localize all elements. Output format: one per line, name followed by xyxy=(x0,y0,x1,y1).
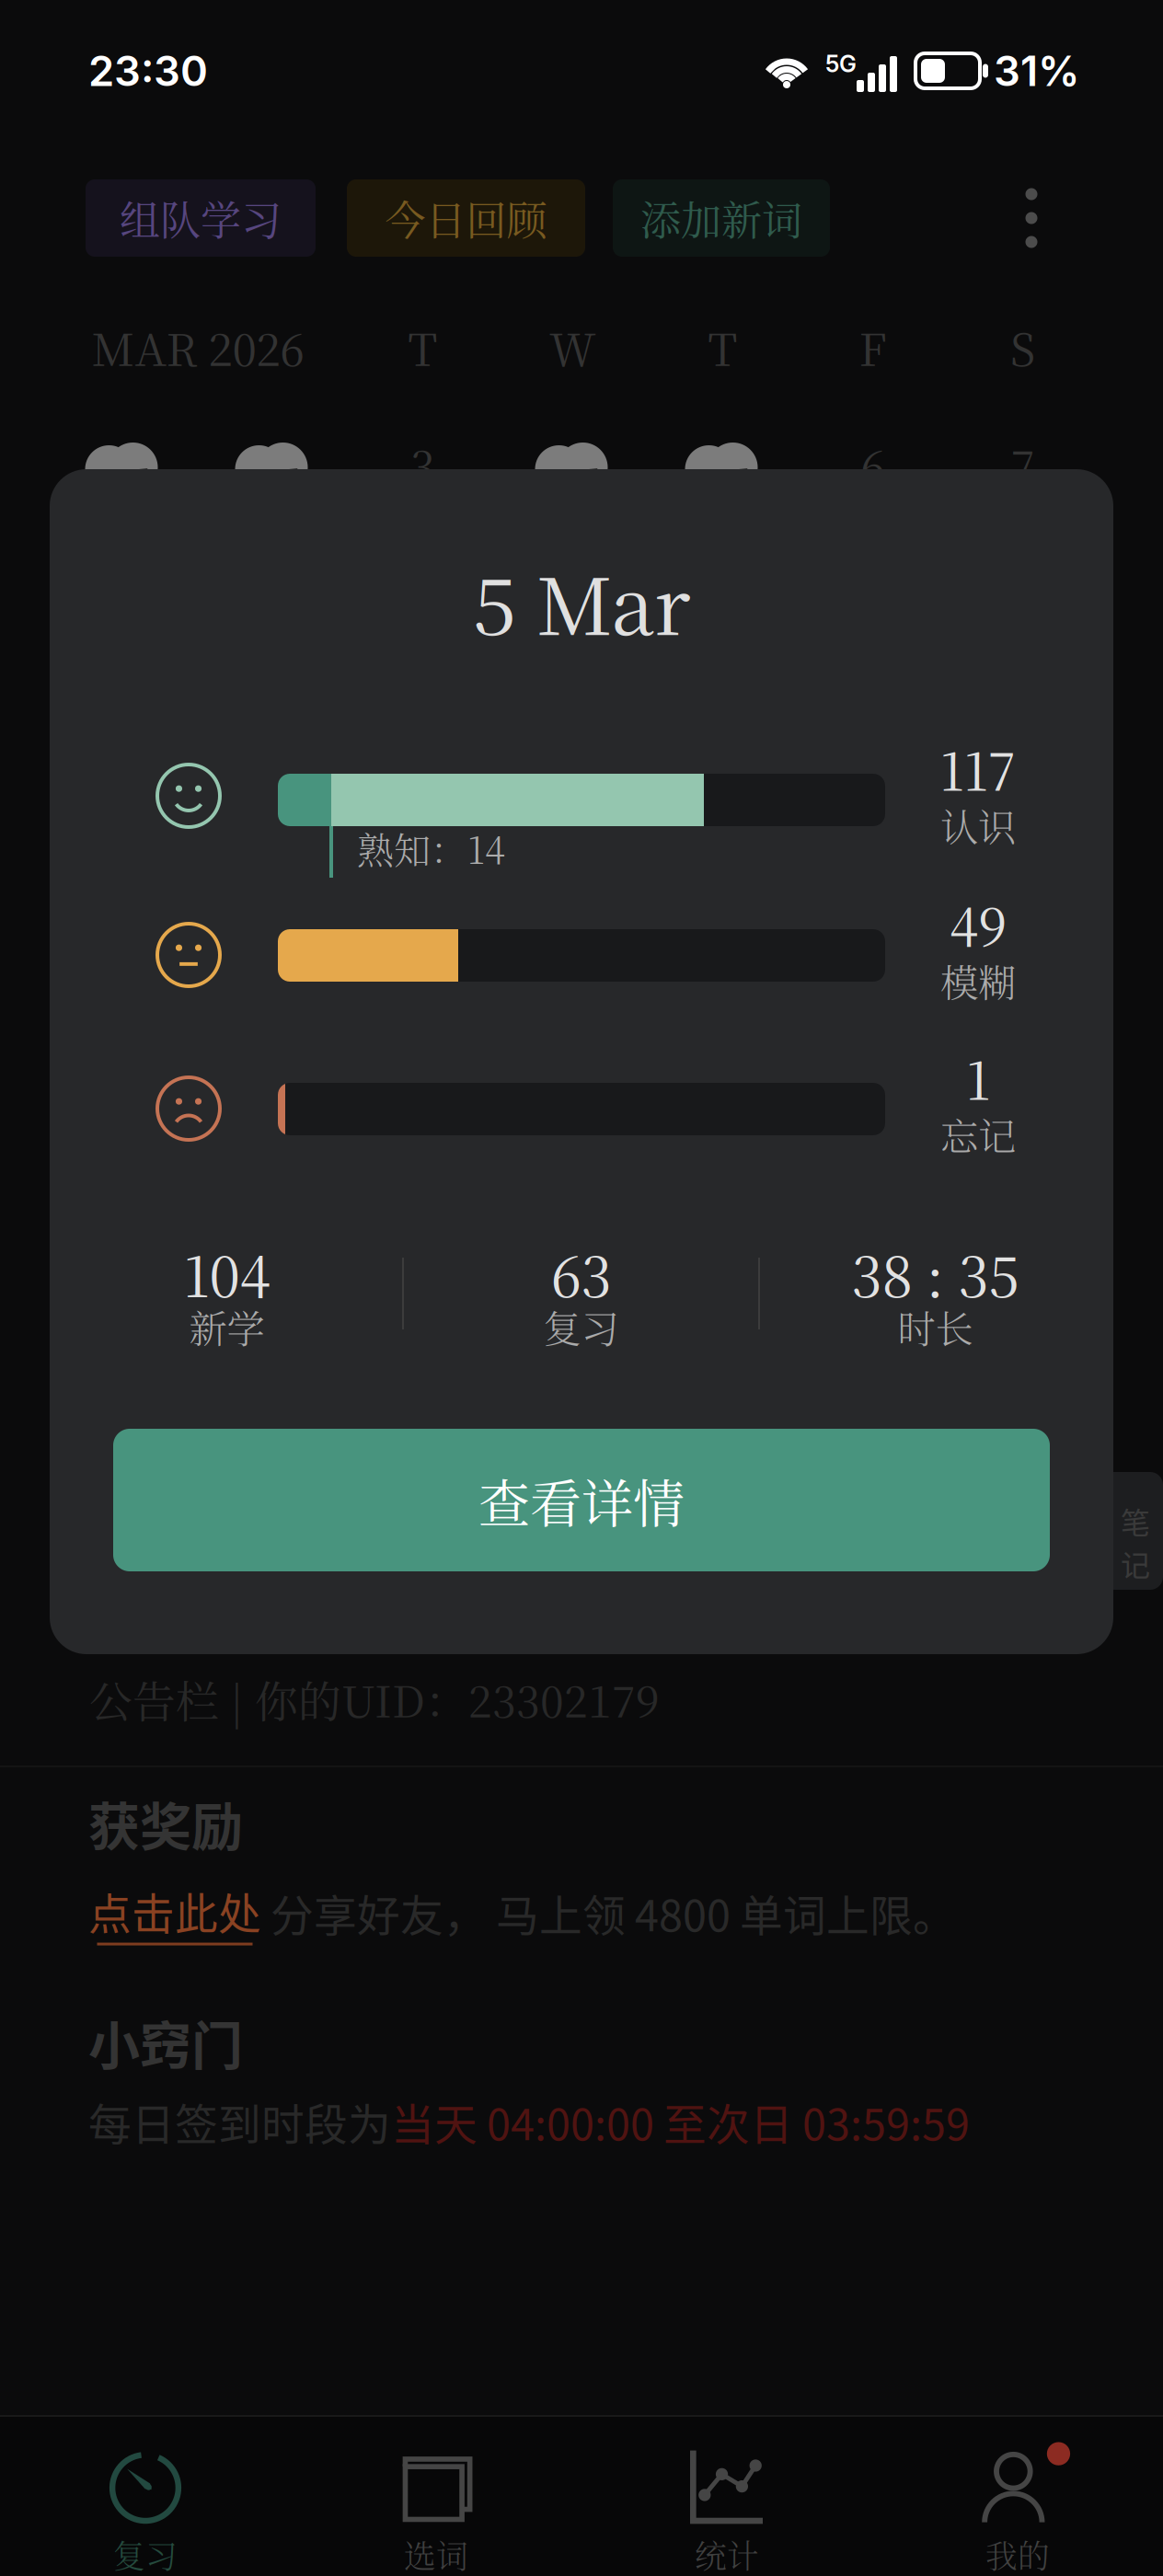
staticText: 记 xyxy=(1121,1542,1150,1585)
staticText: 63 xyxy=(551,1234,611,1313)
button[interactable]: 查看详情 xyxy=(113,1429,1050,1571)
button[interactable]: 复习 xyxy=(0,2417,291,2576)
staticText: 复习 xyxy=(113,2531,178,2576)
staticText: MAR 2026 xyxy=(92,315,304,379)
staticText: 每日签到时段为 xyxy=(88,2090,391,2152)
button[interactable]: 组队学习 xyxy=(86,179,316,257)
staticText: 认识 xyxy=(940,798,1016,852)
button[interactable]: 选词 xyxy=(291,2417,581,2576)
staticText: S xyxy=(1010,315,1035,379)
staticText: T xyxy=(408,315,438,379)
button[interactable]: 统计 xyxy=(581,2417,872,2576)
button[interactable]: 今日回顾 xyxy=(347,179,585,257)
staticText: 49 xyxy=(950,887,1007,961)
button[interactable]: 添加新词 xyxy=(613,179,830,257)
staticText: 今日回顾 xyxy=(385,189,547,247)
staticText: 新学 xyxy=(189,1299,265,1354)
staticText: 统计 xyxy=(695,2531,759,2576)
staticText: 模糊 xyxy=(940,953,1016,1008)
staticText: 5 Mar xyxy=(473,545,690,657)
staticText: 1 xyxy=(966,1041,990,1115)
staticText: 104 xyxy=(184,1234,270,1313)
staticText: 选词 xyxy=(404,2531,468,2576)
staticText: 熟知：14 xyxy=(357,822,505,874)
staticText: 组队学习 xyxy=(120,189,282,247)
staticText: 获奖励 xyxy=(88,1786,243,1860)
staticText: 7 xyxy=(1011,433,1035,496)
staticText: 时长 xyxy=(898,1299,973,1354)
staticText: 复习 xyxy=(543,1299,619,1354)
staticText: 查看详情 xyxy=(478,1463,685,1537)
staticText: F xyxy=(859,315,887,379)
staticText: 我的 xyxy=(985,2531,1050,2576)
staticText: 添加新词 xyxy=(640,189,802,247)
staticText: 笔 xyxy=(1121,1500,1150,1542)
staticText: 6 xyxy=(860,433,885,496)
staticText: 点击此处 xyxy=(88,1880,261,1942)
staticText: 当天 04:00:00 至次日 03:59:59 xyxy=(391,2090,970,2152)
staticText: 31% xyxy=(994,46,1080,96)
button[interactable]: More options xyxy=(987,179,1076,257)
staticText: 小窍门 xyxy=(88,2005,243,2079)
staticText: 117 xyxy=(940,731,1016,805)
button[interactable]: 我的 xyxy=(872,2417,1163,2576)
staticText: 公告栏 | 你的UID：23302179 xyxy=(89,1668,660,1730)
staticText: 5G xyxy=(825,50,857,78)
staticText: 分享好友， 马上领 4800 单词上限。 xyxy=(261,1881,956,1944)
staticText: W xyxy=(549,315,596,379)
staticText: 3 xyxy=(410,433,435,496)
staticText: 38 : 35 xyxy=(852,1234,1019,1313)
staticText: T xyxy=(708,315,737,379)
staticText: 忘记 xyxy=(940,1107,1016,1161)
staticText: 23:30 xyxy=(88,46,208,96)
